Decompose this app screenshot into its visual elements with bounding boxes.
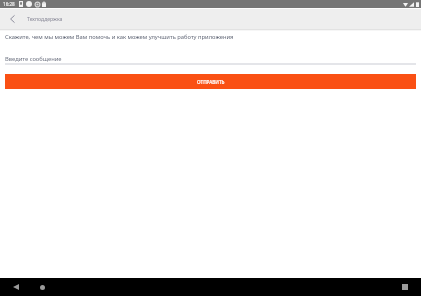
button[interactable]: Home <box>37 282 47 292</box>
staticText: Скажите, чем мы можем Вам помочь и как м… <box>5 33 234 41</box>
staticText: Техподдержка <box>27 16 63 23</box>
button[interactable]: Recent apps <box>400 282 410 292</box>
staticText: ОТПРАВИТЬ <box>197 79 225 85</box>
button[interactable]: ОТПРАВИТЬ <box>5 74 416 89</box>
button[interactable]: Back <box>6 13 18 25</box>
button[interactable]: Back <box>11 282 21 292</box>
staticText: Введите сообщение <box>5 55 62 63</box>
button[interactable]: Введите сообщение <box>0 50 421 65</box>
staticText: 16:28 <box>3 1 15 7</box>
